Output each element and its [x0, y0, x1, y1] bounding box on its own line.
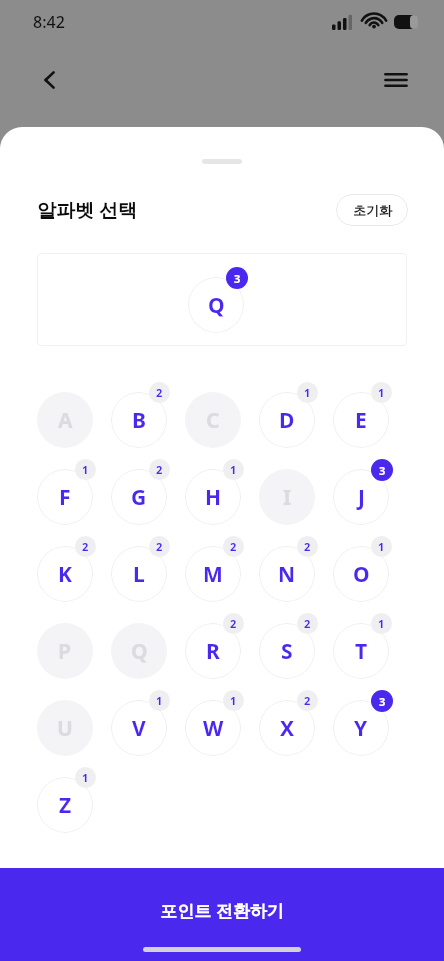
staticText: 2 — [156, 539, 163, 554]
button[interactable]: E — [333, 382, 401, 448]
staticText: 2 — [156, 385, 163, 400]
staticText: Y — [354, 714, 368, 743]
button[interactable]: J — [333, 459, 401, 525]
button[interactable]: H — [185, 459, 253, 525]
staticText: E — [355, 406, 367, 435]
staticText: L — [133, 560, 145, 589]
button[interactable]: D — [259, 382, 327, 448]
staticText: S — [281, 637, 293, 666]
staticText: X — [280, 714, 295, 743]
staticText: Z — [59, 791, 72, 820]
staticText: J — [358, 483, 365, 512]
staticText: R — [206, 637, 220, 666]
staticText: 1 — [230, 462, 237, 477]
staticText: 초기화 — [353, 202, 392, 218]
staticText: G — [131, 483, 147, 512]
button[interactable]: C — [185, 382, 253, 448]
staticText: 2 — [304, 616, 311, 631]
staticText: 3 — [234, 271, 241, 286]
staticText: 1 — [156, 693, 163, 708]
button[interactable]: W — [185, 690, 253, 756]
staticText: 2 — [304, 539, 311, 554]
staticText: K — [58, 560, 72, 589]
button[interactable]: Q — [111, 613, 179, 679]
staticText: C — [206, 406, 220, 435]
button[interactable]: Menu — [376, 60, 416, 100]
staticText: 2 — [230, 539, 237, 554]
staticText: A — [58, 406, 73, 435]
button[interactable]: F — [37, 459, 105, 525]
staticText: 2 — [156, 462, 163, 477]
staticText: P — [58, 637, 72, 666]
staticText: M — [203, 560, 223, 589]
staticText: 2 — [82, 539, 89, 554]
button[interactable]: B — [111, 382, 179, 448]
staticText: B — [132, 406, 146, 435]
button[interactable]: Y — [333, 690, 401, 756]
button[interactable]: N — [259, 536, 327, 602]
staticText: 1 — [82, 462, 89, 477]
staticText: 1 — [378, 385, 385, 400]
staticText: 1 — [230, 693, 237, 708]
staticText: N — [278, 560, 296, 589]
button[interactable]: Z — [37, 767, 105, 833]
button[interactable]: X — [259, 690, 327, 756]
staticText: V — [132, 714, 146, 743]
staticText: I — [283, 483, 292, 512]
button[interactable]: S — [259, 613, 327, 679]
staticText: 1 — [304, 385, 311, 400]
button[interactable]: V — [111, 690, 179, 756]
staticText: F — [59, 483, 71, 512]
button[interactable]: R — [185, 613, 253, 679]
button[interactable]: K — [37, 536, 105, 602]
button[interactable]: G — [111, 459, 179, 525]
button[interactable]: P — [37, 613, 105, 679]
button[interactable]: A — [37, 382, 105, 448]
staticText: 2 — [230, 616, 237, 631]
staticText: 3 — [379, 463, 386, 478]
button[interactable]: I — [259, 459, 327, 525]
staticText: 3 — [379, 694, 386, 709]
button[interactable]: 초기화 — [336, 194, 408, 226]
button[interactable]: U — [37, 690, 105, 756]
staticText: Q — [131, 637, 148, 666]
button[interactable]: O — [333, 536, 401, 602]
staticText: 1 — [82, 770, 89, 785]
staticText: W — [203, 714, 224, 743]
staticText: 2 — [304, 693, 311, 708]
staticText: D — [279, 406, 295, 435]
staticText: H — [205, 483, 222, 512]
staticText: Q — [208, 291, 225, 320]
staticText: 포인트 전환하기 — [0, 899, 444, 922]
staticText: U — [57, 714, 73, 743]
staticText: 8:42 — [33, 11, 65, 33]
staticText: T — [355, 637, 368, 666]
staticText: O — [353, 560, 370, 589]
button[interactable]: L — [111, 536, 179, 602]
staticText: 알파벳 선택 — [37, 197, 137, 223]
button[interactable]: T — [333, 613, 401, 679]
staticText: 1 — [378, 539, 385, 554]
button[interactable]: M — [185, 536, 253, 602]
button[interactable]: Q — [188, 267, 256, 333]
button[interactable]: Back — [30, 60, 70, 100]
staticText: 1 — [378, 616, 385, 631]
button[interactable]: 포인트 전환하기 — [0, 868, 444, 961]
